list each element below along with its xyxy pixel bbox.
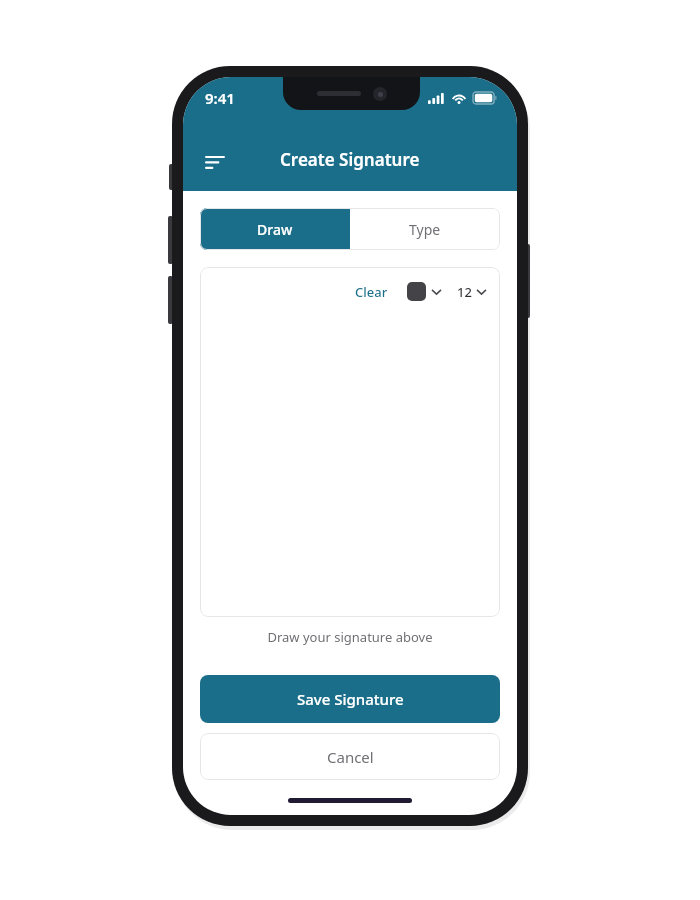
- staticText: Type: [409, 220, 441, 239]
- staticText: Draw your signature above: [200, 628, 500, 646]
- staticText: Save Signature: [297, 689, 404, 709]
- button[interactable]: Cancel: [200, 733, 500, 780]
- button[interactable]: Save Signature: [200, 675, 500, 723]
- staticText: Cancel: [327, 747, 374, 767]
- button[interactable]: Clear: [352, 281, 391, 303]
- staticText: 12: [457, 283, 472, 301]
- staticText: Clear: [355, 283, 388, 301]
- button[interactable]: 12: [455, 281, 488, 303]
- button[interactable]: Draw: [200, 208, 350, 250]
- staticText: 9:41: [205, 88, 235, 108]
- staticText: Create Signature: [280, 148, 420, 171]
- button[interactable]: Type: [350, 208, 500, 250]
- staticText: Draw: [257, 220, 293, 239]
- button[interactable]: Menu: [195, 142, 235, 182]
- button[interactable]: Pen colour: [405, 280, 443, 303]
